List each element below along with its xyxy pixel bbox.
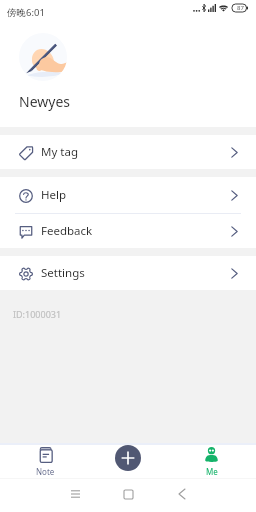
staticText: ID:1000031	[13, 308, 62, 320]
button[interactable]: Back	[168, 484, 195, 504]
staticText: 87	[237, 4, 244, 12]
staticText: Feedback	[41, 223, 93, 239]
staticText: Newyes	[19, 92, 71, 111]
button[interactable]: Me	[171, 443, 256, 478]
staticText: Help	[41, 187, 67, 203]
button[interactable]: Settings	[0, 256, 256, 290]
staticText: 傍晚6:01	[7, 6, 45, 19]
staticText: Note	[36, 466, 55, 477]
button[interactable]: Note	[0, 443, 86, 478]
button[interactable]: Add note	[115, 445, 141, 471]
button[interactable]: My tag	[0, 135, 256, 169]
staticText: Settings	[41, 265, 85, 281]
button[interactable]: Help	[0, 177, 256, 213]
button[interactable]: Feedback	[0, 214, 256, 248]
button[interactable]: Recent apps	[62, 484, 89, 504]
button[interactable]: Profile avatar	[19, 33, 67, 81]
button[interactable]: Home	[115, 484, 142, 504]
staticText: My tag	[41, 144, 78, 160]
staticText: Me	[206, 466, 218, 477]
